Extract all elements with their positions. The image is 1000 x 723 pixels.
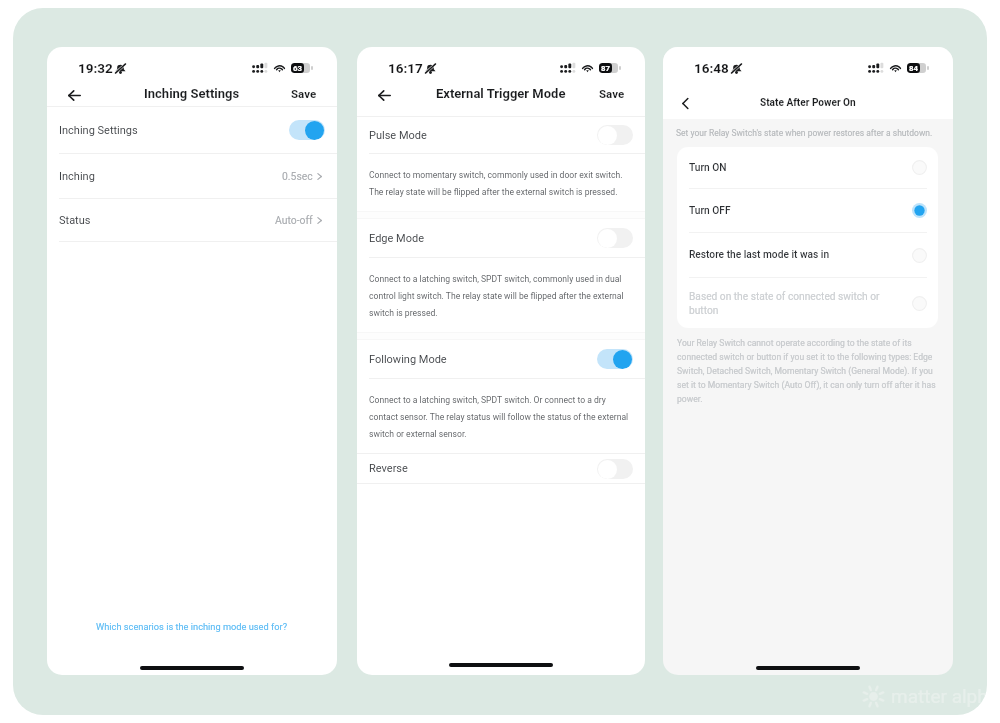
button[interactable]: Turn OFF: [677, 189, 938, 232]
other: Back: [68, 90, 81, 101]
staticText: Based on the state of connected switch o…: [689, 291, 904, 316]
staticText: 63: [293, 64, 302, 73]
button[interactable]: Status: [47, 199, 337, 241]
staticText: 84: [909, 64, 918, 73]
button[interactable]: Turn ON: [677, 147, 938, 188]
button[interactable]: Based on the state of connected switch o…: [677, 278, 938, 328]
staticText: 16:48: [694, 60, 729, 76]
staticText: Set your Relay Switch's state when power…: [676, 128, 933, 138]
button[interactable]: Pulse Mode: [357, 117, 645, 153]
button[interactable]: Edge Mode: [357, 219, 645, 257]
other: Back: [679, 97, 692, 110]
staticText: Inching: [59, 170, 95, 183]
button[interactable]: Reverse: [357, 454, 645, 483]
button[interactable]: Back: [378, 90, 391, 101]
staticText: contact sensor. The relay status will fo…: [369, 412, 629, 422]
staticText: The relay state will be flipped after th…: [369, 187, 618, 197]
staticText: Pulse Mode: [369, 129, 427, 142]
staticText: Inching Settings: [59, 124, 138, 137]
staticText: switch is pressed.: [369, 308, 438, 318]
staticText: Save: [599, 87, 625, 100]
button[interactable]: [597, 459, 633, 479]
button[interactable]: [597, 228, 633, 248]
button[interactable]: Restore the last mode it was in: [677, 233, 938, 277]
staticText: Turn OFF: [689, 205, 904, 217]
staticText: Edge Mode: [369, 232, 425, 245]
staticText: Following Mode: [369, 353, 447, 366]
staticText: matter alpha: [891, 685, 987, 707]
staticText: State After Power On: [760, 97, 856, 109]
button[interactable]: Back: [68, 90, 81, 101]
staticText: Connect to a latching switch, SPDT switc…: [369, 395, 606, 405]
button[interactable]: Which scenarios is the inching mode used…: [96, 621, 288, 632]
button[interactable]: Save: [291, 87, 317, 100]
button[interactable]: Save: [599, 87, 625, 100]
button[interactable]: Following Mode: [357, 340, 645, 378]
staticText: Reverse: [369, 462, 408, 475]
staticText: Connect to momentary switch, commonly us…: [369, 170, 623, 180]
staticText: 0.5sec: [282, 170, 313, 182]
other: Back: [378, 90, 391, 101]
staticText: 16:17: [388, 60, 423, 76]
staticText: Save: [291, 87, 317, 100]
staticText: Status: [59, 214, 91, 227]
staticText: Turn ON: [689, 162, 904, 174]
staticText: Which scenarios is the inching mode used…: [96, 621, 288, 632]
staticText: 19:32: [78, 60, 113, 76]
staticText: 87: [601, 64, 610, 73]
button[interactable]: [597, 349, 633, 369]
button[interactable]: Inching Settings: [47, 107, 337, 153]
staticText: External Trigger Mode: [436, 86, 566, 101]
button[interactable]: Inching: [47, 154, 337, 198]
staticText: Restore the last mode it was in: [689, 249, 904, 261]
staticText: Your Relay Switch cannot operate accordi…: [677, 338, 940, 404]
button[interactable]: [289, 120, 325, 140]
staticText: Connect to a latching switch, SPDT switc…: [369, 274, 622, 284]
staticText: Auto-off: [275, 214, 313, 226]
button[interactable]: Back: [679, 97, 692, 110]
button[interactable]: [597, 125, 633, 145]
staticText: control light switch. The relay state wi…: [369, 291, 624, 301]
staticText: switch or external sensor.: [369, 429, 467, 439]
staticText: Inching Settings: [144, 86, 240, 101]
